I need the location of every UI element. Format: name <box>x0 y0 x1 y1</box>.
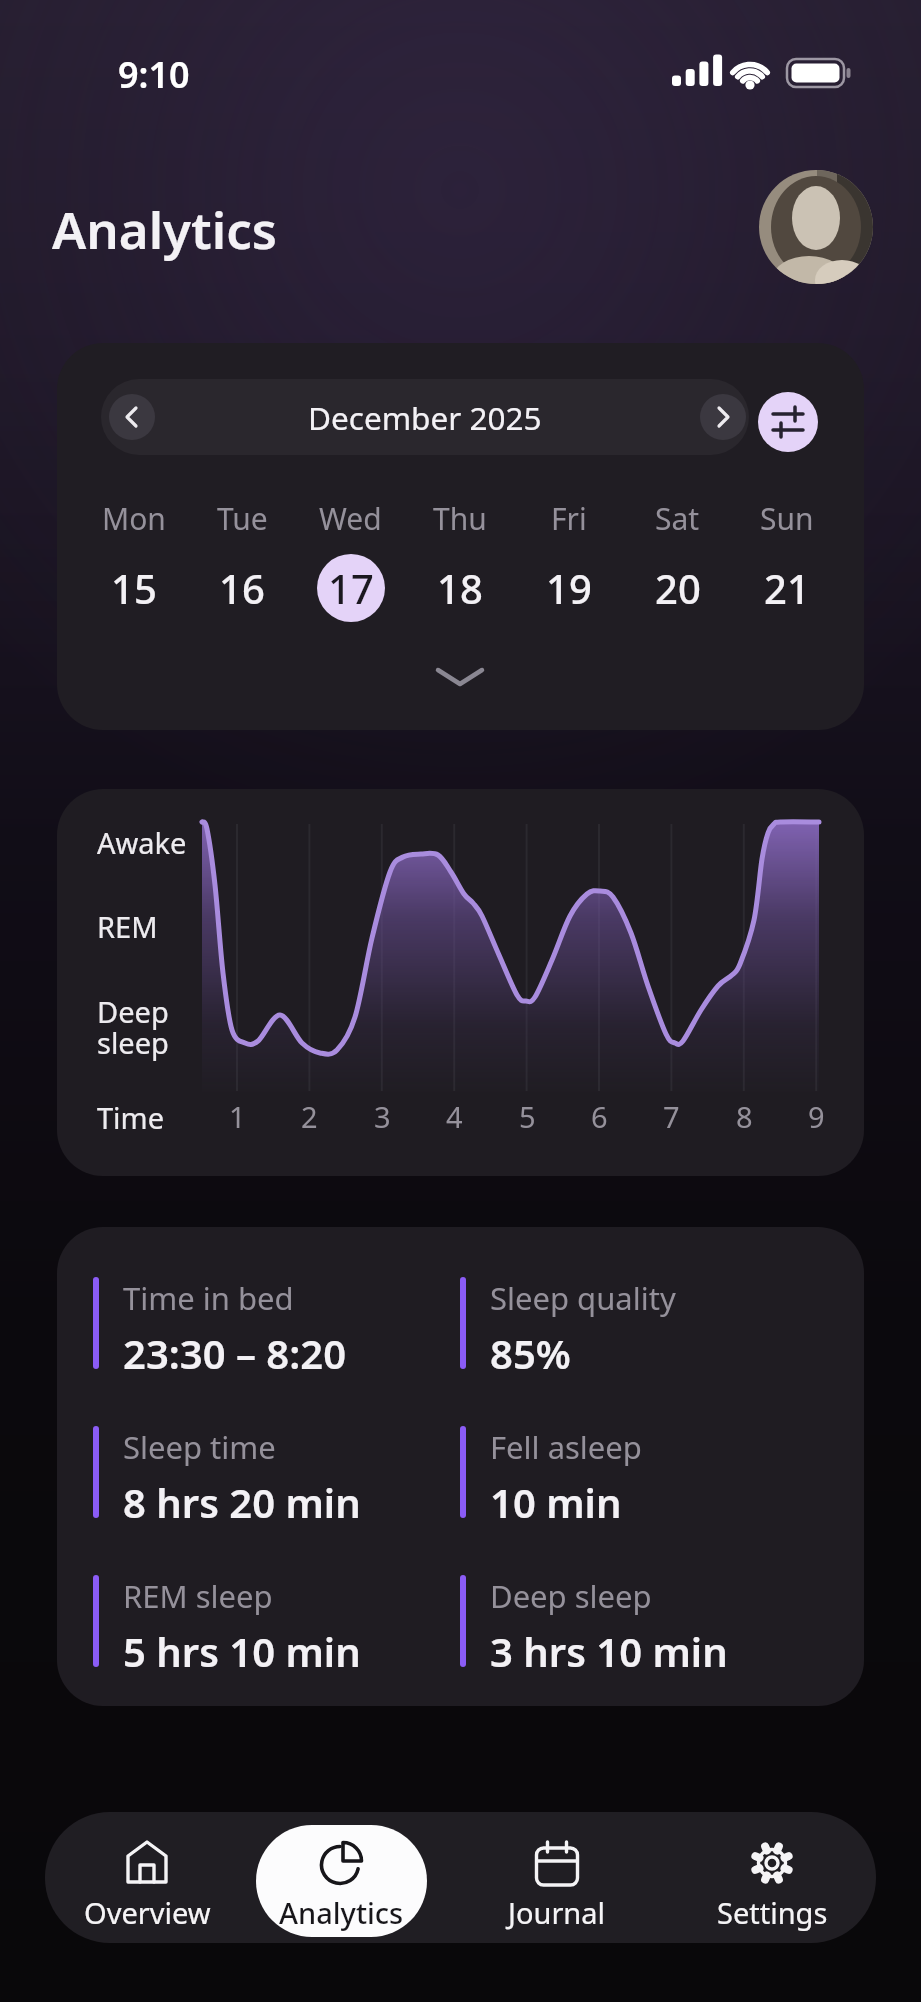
button[interactable]: 18 <box>405 554 514 622</box>
staticText: 18 <box>437 561 483 615</box>
staticText: 5 hrs 10 min <box>123 1624 361 1667</box>
staticText: Fell asleep <box>490 1426 642 1468</box>
staticText: 3 <box>374 1097 391 1133</box>
button[interactable]: 20 <box>623 554 732 622</box>
staticText: Analytics <box>279 1893 404 1932</box>
staticText: 17 <box>328 561 374 615</box>
staticText: December 2025 <box>308 396 542 439</box>
staticText: 4 <box>446 1097 463 1133</box>
staticText: 1 <box>229 1097 246 1133</box>
staticText: 16 <box>219 561 265 615</box>
button[interactable] <box>758 392 818 452</box>
staticText: 9 <box>808 1097 825 1133</box>
staticText: 10 min <box>490 1475 622 1518</box>
staticText: 9:10 <box>118 50 190 96</box>
staticText: Journal <box>508 1893 606 1932</box>
button[interactable]: 17 <box>296 554 405 622</box>
staticText: Overview <box>84 1893 211 1932</box>
staticText: 19 <box>546 561 592 615</box>
staticText: Tue <box>217 498 268 534</box>
staticText: 2 <box>301 1097 318 1133</box>
staticText: Sun <box>760 498 814 534</box>
staticText: Thu <box>433 498 487 534</box>
staticText: Deep sleep <box>97 992 169 1063</box>
staticText: 20 <box>655 561 701 615</box>
staticText: REM sleep <box>123 1575 273 1617</box>
button[interactable]: Settings <box>687 1812 857 1943</box>
staticText: 3 hrs 10 min <box>490 1624 728 1667</box>
staticText: Settings <box>717 1893 828 1932</box>
button[interactable]: 19 <box>514 554 623 622</box>
staticText: Wed <box>319 498 382 534</box>
button[interactable]: Overview <box>62 1812 232 1943</box>
staticText: 21 <box>764 561 810 615</box>
button[interactable]: 21 <box>732 554 841 622</box>
staticText: 85% <box>490 1326 571 1369</box>
staticText: Fri <box>551 498 587 534</box>
staticText: Sleep time <box>123 1426 276 1468</box>
staticText: 15 <box>111 561 157 615</box>
button[interactable]: Journal <box>472 1812 642 1943</box>
staticText: Sleep quality <box>490 1277 676 1319</box>
staticText: Analytics <box>52 194 277 263</box>
staticText: Awake <box>97 823 187 862</box>
staticText: Time <box>97 1098 165 1137</box>
button[interactable] <box>109 394 155 440</box>
staticText: Sat <box>655 498 700 534</box>
button[interactable] <box>700 394 746 440</box>
button[interactable]: Analytics <box>256 1812 426 1943</box>
staticText: 6 <box>591 1097 608 1133</box>
staticText: 8 hrs 20 min <box>123 1475 361 1518</box>
staticText: Deep sleep <box>490 1575 652 1617</box>
staticText: REM <box>97 907 158 946</box>
button[interactable] <box>759 170 873 284</box>
button[interactable] <box>420 653 500 701</box>
staticText: 8 <box>736 1097 753 1133</box>
staticText: 7 <box>663 1097 680 1133</box>
button[interactable]: 16 <box>188 554 296 622</box>
staticText: Mon <box>102 498 166 534</box>
button[interactable]: 15 <box>80 554 188 622</box>
staticText: Time in bed <box>123 1277 294 1319</box>
staticText: 23:30 – 8:20 <box>123 1326 347 1369</box>
staticText: 5 <box>519 1097 536 1133</box>
